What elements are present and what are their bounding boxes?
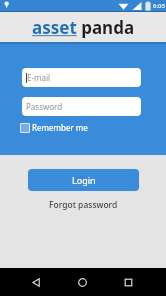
staticText: Login bbox=[72, 174, 96, 186]
button[interactable]: Forgot password bbox=[49, 199, 118, 211]
button[interactable]: E-mail bbox=[22, 68, 141, 87]
button[interactable]: Password bbox=[22, 97, 141, 116]
button[interactable]: Login bbox=[28, 169, 139, 191]
button[interactable]: Remember me bbox=[20, 122, 88, 133]
button[interactable] bbox=[72, 272, 92, 292]
button[interactable] bbox=[118, 272, 138, 292]
staticText: Remember me bbox=[32, 122, 88, 133]
staticText: Forgot password bbox=[49, 199, 118, 211]
button[interactable] bbox=[26, 272, 46, 292]
staticText: asset panda bbox=[32, 16, 135, 39]
staticText: E-mail bbox=[27, 72, 51, 83]
staticText: Password bbox=[26, 101, 63, 112]
staticText: 6:05 bbox=[153, 2, 165, 10]
